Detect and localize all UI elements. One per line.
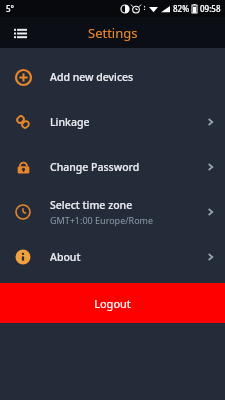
- staticText: Add new devices: [50, 70, 134, 84]
- staticText: Logout: [94, 296, 131, 311]
- button[interactable]: Select time zone: [0, 189, 225, 234]
- button[interactable]: About: [0, 234, 225, 279]
- staticText: Linkage: [50, 115, 90, 129]
- staticText: 5°: [6, 3, 14, 14]
- button[interactable]: Add new devices: [0, 54, 225, 99]
- staticText: Select time zone: [50, 198, 133, 212]
- staticText: Settings: [88, 24, 138, 42]
- staticText: 09:58: [200, 3, 221, 14]
- button[interactable]: Logout: [0, 283, 225, 323]
- button[interactable]: Menu: [8, 21, 32, 45]
- staticText: 82%: [173, 3, 189, 14]
- button[interactable]: Change Password: [0, 144, 225, 189]
- staticText: About: [50, 250, 81, 264]
- staticText: GMT+1:00 Europe/Rome: [50, 214, 154, 226]
- staticText: Change Password: [50, 160, 140, 174]
- button[interactable]: Linkage: [0, 99, 225, 144]
